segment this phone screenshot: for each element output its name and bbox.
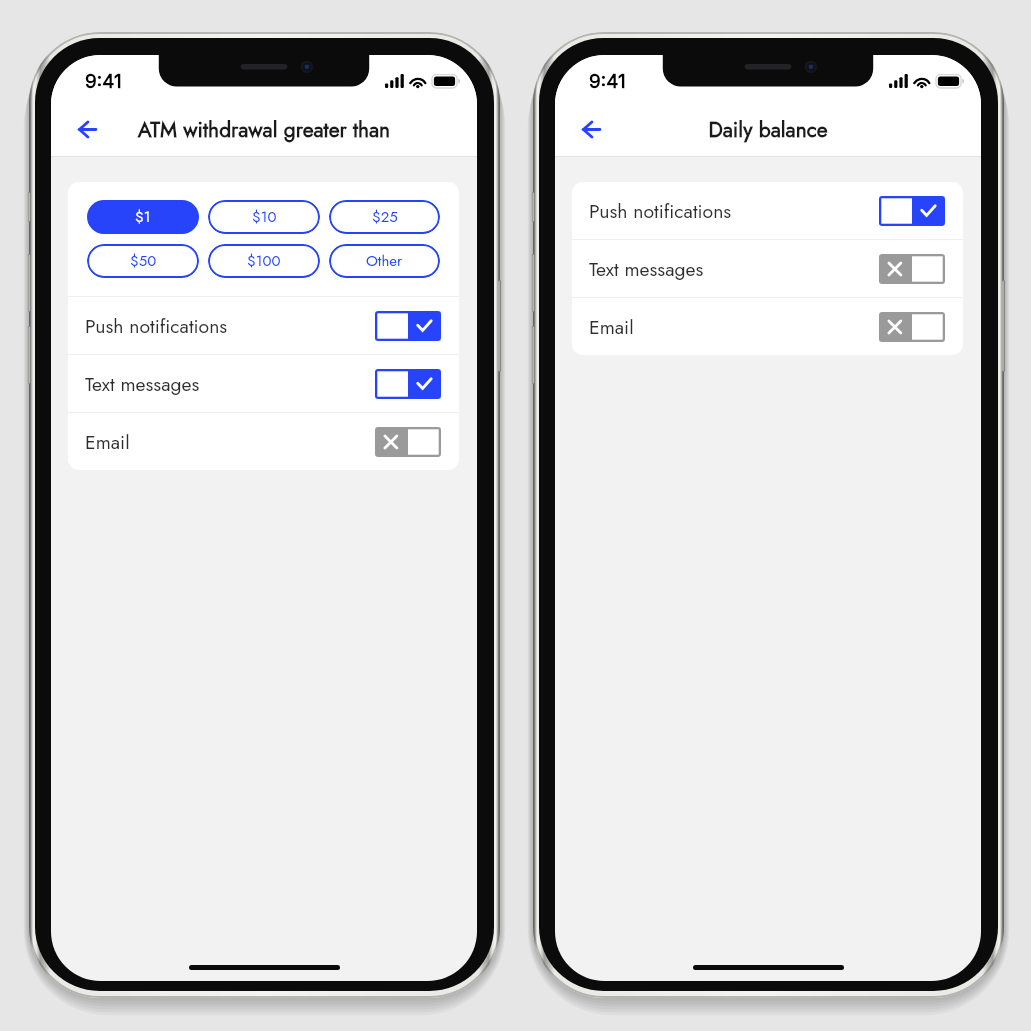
button[interactable]: Turn off Text messages: [375, 369, 441, 399]
staticText: Text messages: [589, 255, 704, 283]
staticText: $25: [372, 206, 398, 228]
button[interactable]: $50: [87, 244, 199, 278]
button[interactable]: Text messages: [572, 240, 963, 297]
button[interactable]: Turn off Push notifications: [375, 311, 441, 341]
staticText: Push notifications: [85, 312, 228, 340]
button[interactable]: Email: [68, 413, 459, 470]
staticText: Other: [366, 250, 403, 272]
button[interactable]: Email: [572, 298, 963, 355]
staticText: 9:41: [589, 70, 626, 93]
staticText: $50: [130, 250, 157, 272]
button[interactable]: Turn on Text messages: [879, 254, 945, 284]
button[interactable]: Push notifications: [68, 297, 459, 354]
button[interactable]: $10: [208, 200, 320, 234]
button[interactable]: Turn on Email: [879, 312, 945, 342]
staticText: $100: [247, 250, 281, 272]
staticText: Email: [589, 313, 634, 341]
staticText: Text messages: [85, 370, 200, 398]
button[interactable]: Turn off Push notifications: [879, 196, 945, 226]
button[interactable]: Text messages: [68, 355, 459, 412]
button[interactable]: Push notifications: [572, 182, 963, 239]
staticText: $10: [252, 206, 277, 228]
staticText: 9:41: [85, 70, 122, 93]
button[interactable]: Back: [568, 106, 614, 152]
button[interactable]: Back: [64, 106, 110, 152]
staticText: ATM withdrawal greater than: [51, 115, 477, 145]
button[interactable]: $1: [87, 200, 199, 234]
staticText: Email: [85, 428, 130, 456]
staticText: Daily balance: [555, 115, 981, 145]
button[interactable]: $100: [208, 244, 320, 278]
button[interactable]: $25: [329, 200, 440, 234]
button[interactable]: Turn on Email: [375, 427, 441, 457]
staticText: Push notifications: [589, 197, 732, 225]
staticText: $1: [135, 206, 151, 228]
button[interactable]: Other: [329, 244, 440, 278]
